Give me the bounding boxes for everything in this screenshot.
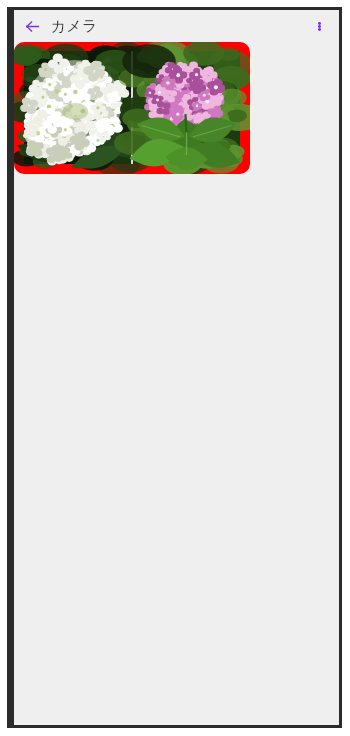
staticText: カメラ: [51, 17, 98, 36]
button[interactable]: 戻る: [20, 14, 44, 38]
button[interactable]: その他のオプション: [307, 14, 331, 38]
button[interactable]: [14, 42, 250, 174]
